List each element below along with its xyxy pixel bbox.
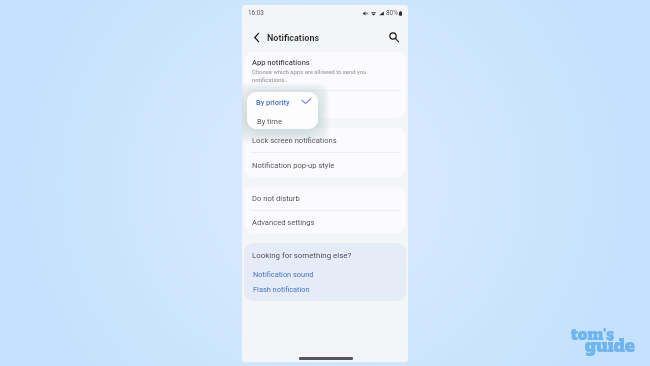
staticText: Looking for something else? [252,251,352,260]
staticText: tom's [571,324,615,345]
button[interactable]: By priority [247,92,318,112]
button[interactable]: By time [247,112,318,129]
staticText: By time [257,117,282,126]
staticText: Notification pop-up style [252,161,335,170]
staticText: Flash notification [253,285,310,294]
staticText: By priority [256,98,290,107]
button[interactable]: Flash notification [253,285,310,294]
button[interactable]: Do not disturb [244,187,406,210]
staticText: Advanced settings [252,218,315,227]
staticText: Notification sound [253,270,314,279]
button[interactable]: Back [248,29,264,45]
staticText: Most recent [252,100,293,109]
button[interactable]: Notification pop-up style [244,153,406,177]
staticText: 80% [386,9,398,17]
button[interactable]: Advanced settings [244,211,406,233]
staticText: Do not disturb [252,194,300,203]
staticText: Choose which apps are allowed to send yo… [252,69,396,84]
button[interactable]: Most recent [244,91,406,118]
button[interactable]: Notification sound [253,270,314,279]
staticText: Notifications [267,33,320,44]
staticText: guide [585,334,635,357]
button[interactable]: Search [387,30,401,44]
staticText: 16:03 [248,9,264,17]
staticText: Lock screen notifications [252,136,337,145]
staticText: App notifications [252,58,310,67]
button[interactable]: App notifications [244,52,406,90]
button[interactable]: Lock screen notifications [244,128,406,152]
